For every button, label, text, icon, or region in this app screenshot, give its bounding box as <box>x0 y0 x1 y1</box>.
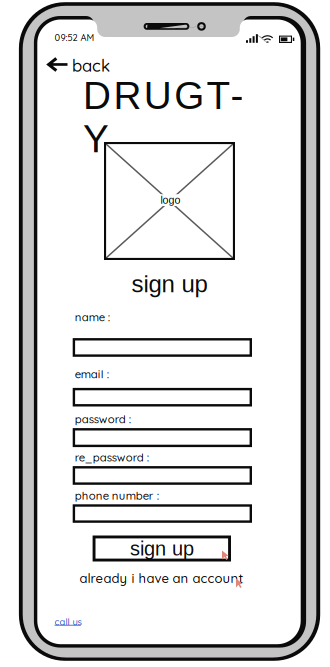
staticText: DRUGTY <box>83 74 259 117</box>
staticText: back <box>72 55 110 76</box>
staticText: sign up <box>130 537 194 560</box>
staticText: call us <box>54 616 81 628</box>
button[interactable]: Back <box>0 0 330 667</box>
button[interactable]: sign up <box>0 0 330 667</box>
staticText: already i have an account <box>79 570 243 586</box>
staticText: logo <box>160 194 180 206</box>
staticText: name : <box>75 310 110 324</box>
staticText: password : <box>75 412 131 426</box>
staticText: email : <box>75 367 109 381</box>
staticText: re_password : <box>75 450 149 464</box>
button[interactable]: already i have an account <box>0 0 330 667</box>
staticText: sign up <box>131 271 207 297</box>
staticText: phone number : <box>75 488 159 503</box>
staticText: 09:52 AM <box>54 32 94 43</box>
button[interactable]: call us <box>0 0 330 667</box>
